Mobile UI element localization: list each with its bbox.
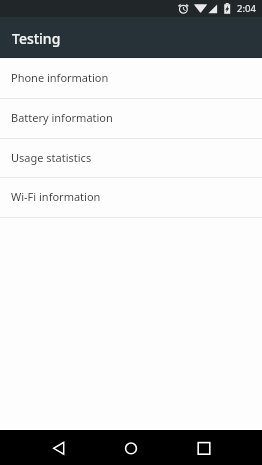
staticText: Testing [12,29,61,48]
button[interactable]: Usage statistics [0,139,262,178]
button[interactable]: Battery information [0,99,262,139]
button[interactable]: Back [36,430,80,465]
button[interactable]: Home [109,430,153,465]
staticText: Battery information [11,110,113,125]
staticText: 2:04 [237,2,256,15]
button[interactable]: Phone information [0,59,262,99]
staticText: Usage statistics [11,150,92,165]
staticText: Wi-Fi information [11,189,101,204]
button[interactable]: Recent apps [182,430,226,465]
staticText: Phone information [11,70,109,85]
button[interactable]: Wi-Fi information [0,178,262,218]
